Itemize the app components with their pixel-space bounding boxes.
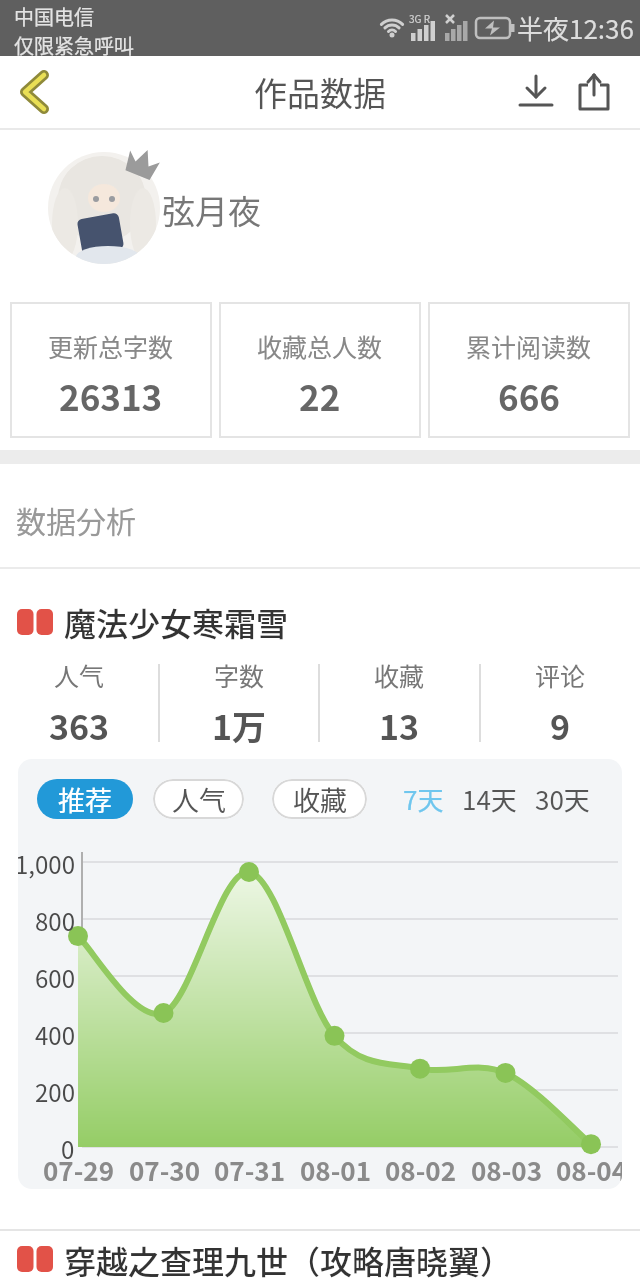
staticText: 累计阅读数 <box>466 328 592 364</box>
staticText: 200 <box>35 1074 75 1109</box>
staticText: 08-04 <box>556 1151 622 1189</box>
staticText: 400 <box>35 1017 75 1052</box>
staticText: 666 <box>498 370 560 421</box>
staticText: 收藏 <box>293 780 347 819</box>
button[interactable]: 30天 <box>535 780 590 818</box>
staticText: 08-02 <box>385 1151 456 1189</box>
staticText: 人气 <box>54 657 105 693</box>
staticText: 推荐 <box>58 780 112 819</box>
button[interactable]: 7天 <box>403 780 444 818</box>
staticText: 7天 <box>403 780 444 818</box>
staticText: 30天 <box>535 780 590 818</box>
staticText: 半夜12:36 <box>517 9 634 47</box>
staticText: 收藏总人数 <box>257 328 383 364</box>
staticText: 9 <box>550 701 571 749</box>
staticText: 0 <box>61 1131 75 1166</box>
staticText: 仅限紧急呼叫 <box>14 31 134 56</box>
staticText: 中国电信 <box>14 2 94 31</box>
staticText: 08-01 <box>300 1151 371 1189</box>
staticText: 14天 <box>462 780 517 818</box>
button[interactable] <box>516 72 556 112</box>
staticText: 评论 <box>535 657 586 693</box>
staticText: 数据分析 <box>16 498 136 541</box>
staticText: 更新总字数 <box>48 328 174 364</box>
staticText: 13 <box>379 701 420 749</box>
button[interactable] <box>12 70 56 114</box>
staticText: 363 <box>49 701 110 749</box>
button[interactable]: 人气 <box>153 779 244 819</box>
staticText: 字数 <box>214 657 265 693</box>
staticText: 07-29 <box>43 1151 114 1189</box>
button[interactable]: 推荐 <box>37 779 133 819</box>
button[interactable]: 14天 <box>462 780 517 818</box>
staticText: 1万 <box>212 701 267 749</box>
staticText: 26313 <box>59 370 163 421</box>
staticText: 08-03 <box>471 1151 542 1189</box>
button[interactable]: 魔法少女寒霜雪 <box>16 599 640 645</box>
staticText: 800 <box>35 903 75 938</box>
button[interactable]: 穿越之查理九世（攻略唐晓翼） <box>16 1237 640 1280</box>
button[interactable]: 收藏 <box>272 779 367 819</box>
staticText: 1,000 <box>18 846 75 881</box>
staticText: 收藏 <box>374 657 425 693</box>
staticText: 22 <box>299 370 341 421</box>
staticText: 人气 <box>172 780 226 819</box>
button[interactable]: 收藏总人数 <box>219 302 421 438</box>
staticText: 穿越之查理九世（攻略唐晓翼） <box>64 1237 513 1280</box>
staticText: 07-30 <box>129 1151 200 1189</box>
staticText: 07-31 <box>214 1151 285 1189</box>
button[interactable]: 更新总字数 <box>10 302 212 438</box>
staticText: 弦月夜 <box>162 186 261 234</box>
staticText: 3G R <box>409 11 431 25</box>
button[interactable]: 累计阅读数 <box>428 302 630 438</box>
button[interactable] <box>48 152 160 264</box>
staticText: 600 <box>35 960 75 995</box>
staticText: 魔法少女寒霜雪 <box>64 599 289 645</box>
button[interactable] <box>574 72 614 112</box>
staticText: 作品数据 <box>254 68 386 116</box>
